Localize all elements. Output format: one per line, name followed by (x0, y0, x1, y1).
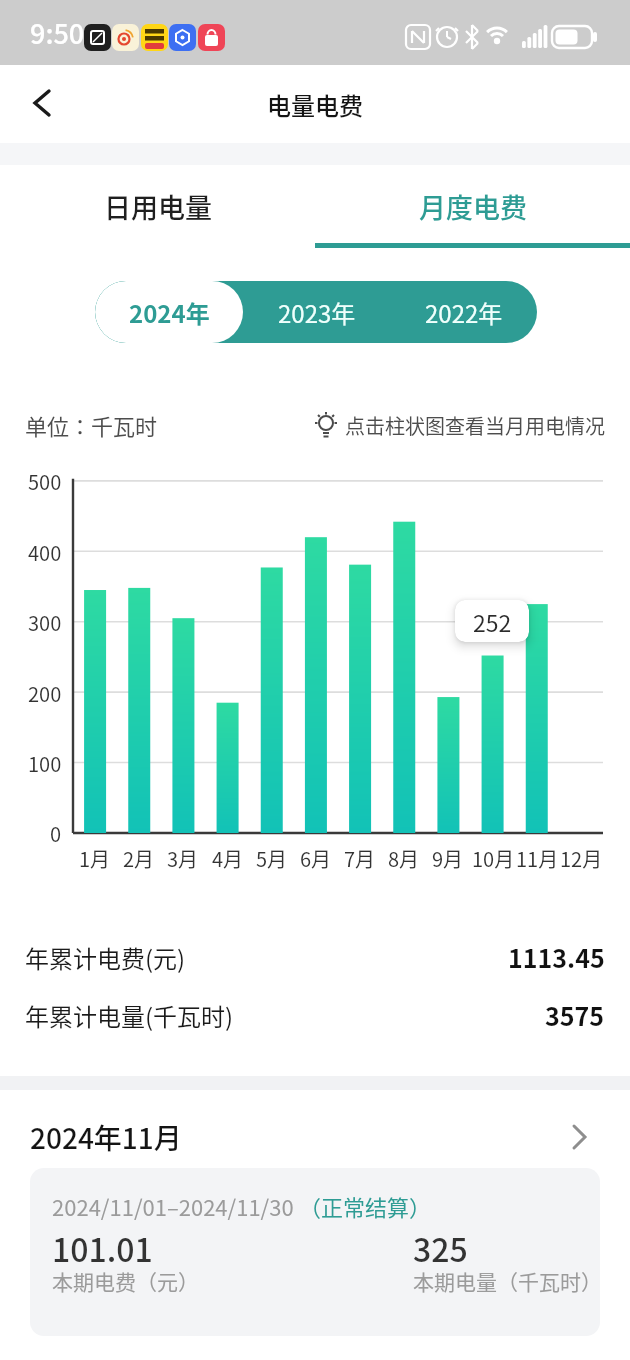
staticText: 252 (473, 605, 512, 638)
staticText: 100 (28, 749, 62, 778)
staticText: 5月 (256, 844, 288, 873)
staticText: 200 (28, 679, 62, 708)
staticText: 年累计电量(千瓦时) (25, 998, 234, 1033)
staticText: 9月 (432, 844, 464, 873)
staticText: 单位：千瓦时 (25, 409, 158, 441)
staticText: 年累计电费(元) (25, 940, 186, 975)
staticText: 101.01 (52, 1225, 153, 1271)
button[interactable]: 2024/11/01–2024/11/30 (30, 1168, 600, 1336)
staticText: 日用电量 (104, 187, 212, 226)
staticText: 0 (50, 819, 62, 848)
staticText: 300 (28, 608, 62, 637)
button[interactable]: 月度电费 (315, 165, 630, 248)
staticText: 点击柱状图查看当月用电情况 (345, 411, 605, 440)
staticText: 2023年 (278, 295, 356, 330)
button[interactable] (12, 73, 72, 133)
staticText: 2月 (123, 844, 155, 873)
staticText: 500 (28, 467, 62, 496)
staticText: 4月 (212, 844, 244, 873)
staticText: 2022年 (425, 295, 503, 330)
button[interactable]: 日用电量 (0, 165, 315, 248)
staticText: 400 (28, 538, 62, 567)
staticText: 本期电费（元） (52, 1266, 199, 1296)
button[interactable]: 2023年 (243, 281, 390, 343)
staticText: （正常结算） (299, 1190, 432, 1222)
staticText: 2024年11月 (30, 1117, 182, 1158)
staticText: 3575 (545, 997, 605, 1033)
staticText: 1月 (79, 844, 111, 873)
staticText: 8月 (388, 844, 420, 873)
staticText: 电量电费 (267, 87, 363, 122)
staticText: 12月 (560, 844, 603, 873)
staticText: 9:50 (30, 13, 85, 52)
staticText: 本期电量（千瓦时） (413, 1266, 600, 1296)
staticText: 月度电费 (419, 187, 527, 226)
staticText: 7月 (344, 844, 376, 873)
staticText: 6月 (300, 844, 332, 873)
staticText: 325 (413, 1225, 468, 1271)
staticText: 1113.45 (508, 939, 605, 975)
staticText: 11月 (516, 844, 559, 873)
staticText: 2024/11/01–2024/11/30 (52, 1190, 299, 1222)
button[interactable]: 2022年 (390, 281, 537, 343)
button[interactable]: 2024年11月 (0, 1105, 630, 1169)
staticText: 10月 (472, 844, 515, 873)
staticText: 2024年 (129, 295, 210, 330)
button[interactable]: 2024年 (95, 281, 243, 343)
staticText: 3月 (167, 844, 199, 873)
